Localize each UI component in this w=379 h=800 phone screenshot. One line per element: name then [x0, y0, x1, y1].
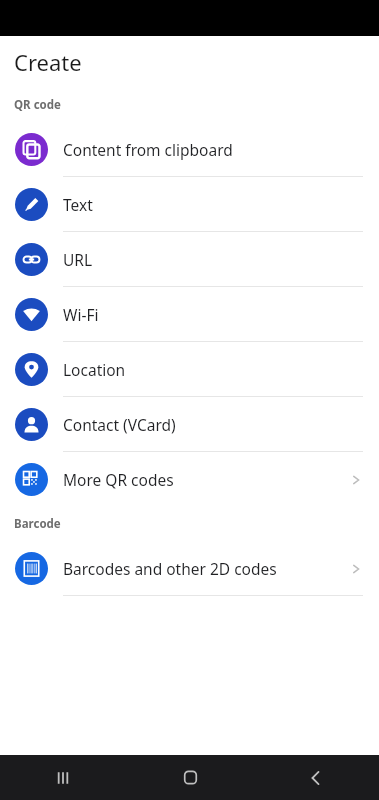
button[interactable]: More QR codes — [0, 452, 379, 507]
staticText: QR code — [14, 97, 61, 113]
button[interactable]: Home — [145, 755, 235, 800]
staticText: Location — [63, 359, 363, 380]
button[interactable]: Barcodes and other 2D codes — [0, 541, 379, 596]
button[interactable]: Recent apps — [18, 755, 108, 800]
staticText: Barcode — [14, 516, 61, 532]
staticText: Create — [14, 47, 82, 77]
button[interactable]: Text — [0, 177, 379, 232]
button[interactable]: Back — [271, 755, 361, 800]
button[interactable]: URL — [0, 232, 379, 287]
staticText: Barcodes and other 2D codes — [63, 558, 349, 579]
staticText: Content from clipboard — [63, 139, 363, 160]
button[interactable]: Wi-Fi — [0, 287, 379, 342]
button[interactable]: Content from clipboard — [0, 122, 379, 177]
button[interactable]: Contact (VCard) — [0, 397, 379, 452]
staticText: More QR codes — [63, 469, 349, 490]
staticText: URL — [63, 249, 363, 270]
staticText: Text — [63, 194, 363, 215]
staticText: Wi-Fi — [63, 304, 363, 325]
staticText: Contact (VCard) — [63, 414, 363, 435]
button[interactable]: Location — [0, 342, 379, 397]
